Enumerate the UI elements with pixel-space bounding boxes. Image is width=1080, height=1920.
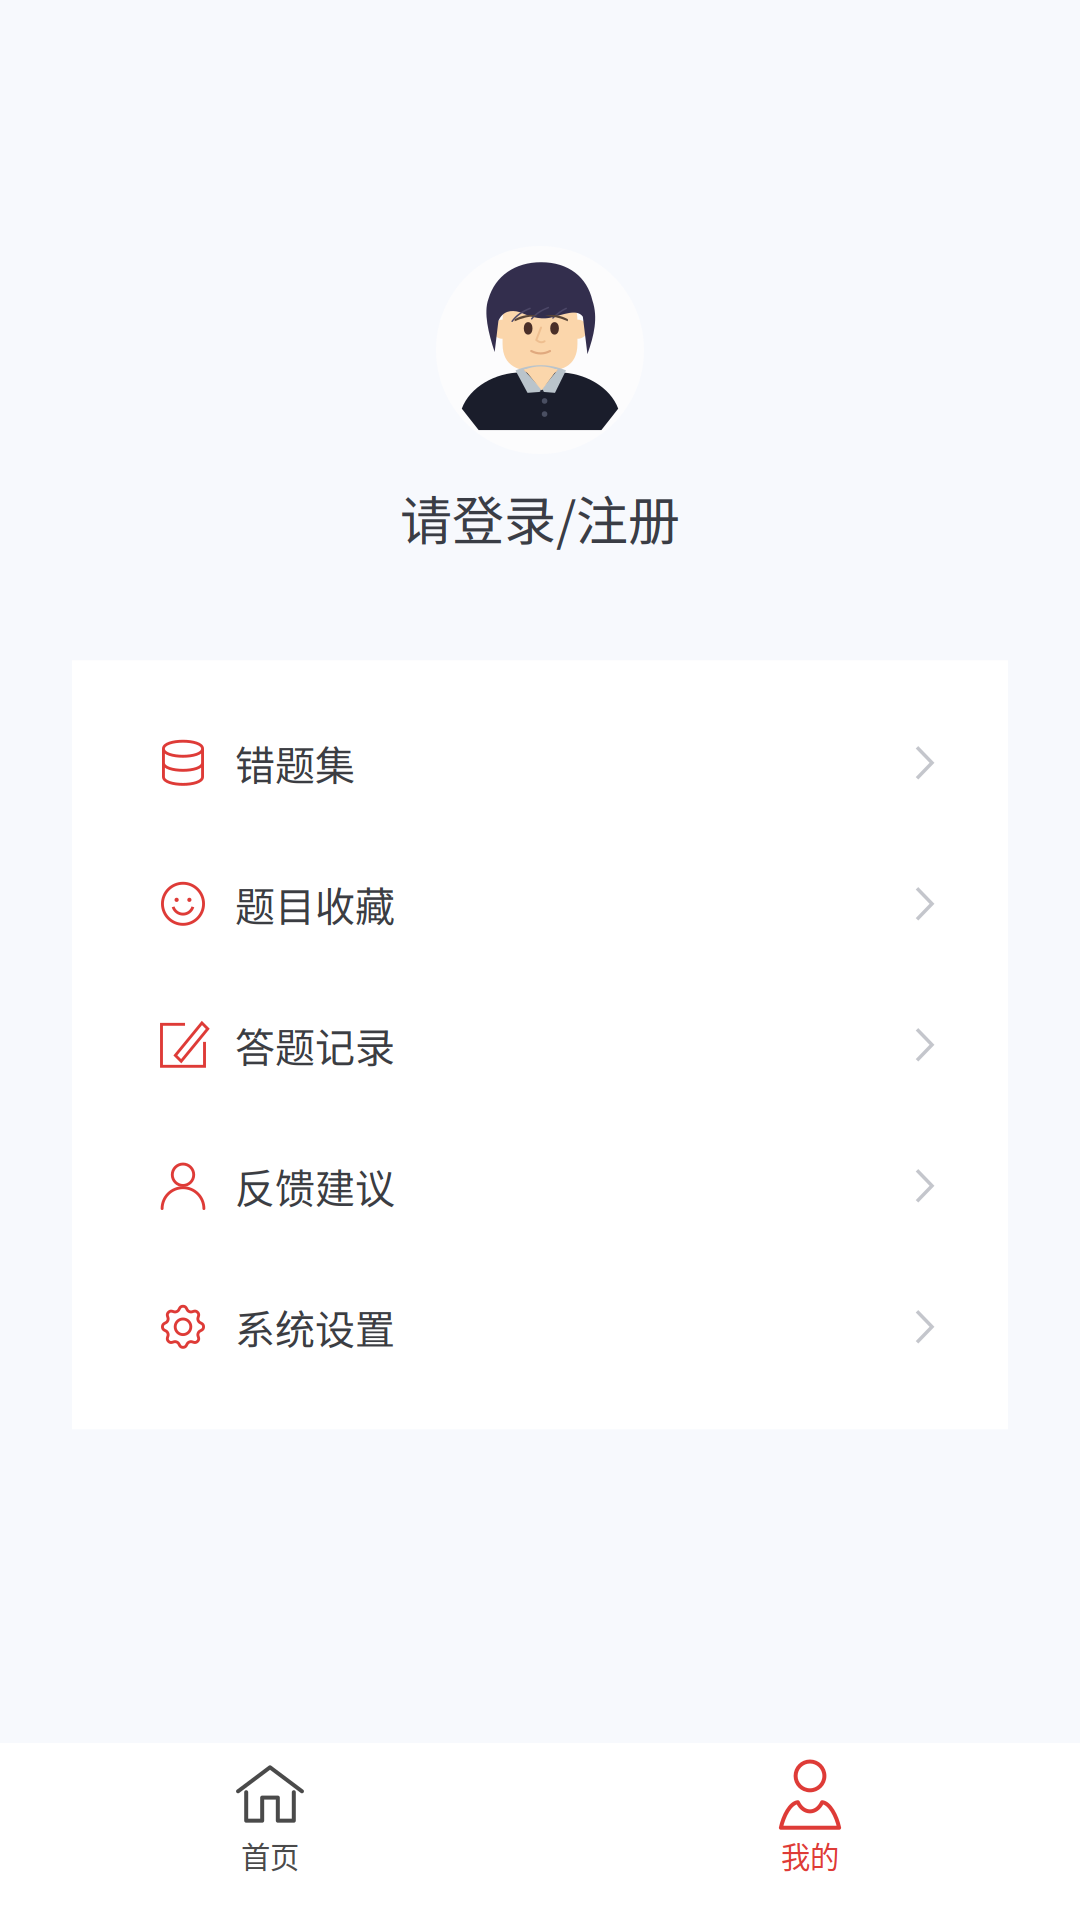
button[interactable]: 错题集 (72, 692, 1008, 833)
button[interactable]: 请登录/注册 (400, 246, 680, 555)
button[interactable]: 题目收藏 (72, 833, 1008, 974)
staticText: 错题集 (235, 734, 355, 792)
staticText: 题目收藏 (235, 875, 395, 933)
staticText: 答题记录 (235, 1016, 395, 1074)
staticText: 首页 (241, 1834, 299, 1876)
staticText: 请登录/注册 (400, 480, 680, 555)
staticText: 系统设置 (235, 1298, 395, 1356)
button[interactable]: 反馈建议 (72, 1115, 1008, 1256)
button[interactable]: 首页 (0, 1743, 540, 1920)
button[interactable]: 答题记录 (72, 974, 1008, 1115)
button[interactable]: 系统设置 (72, 1256, 1008, 1397)
staticText: 我的 (781, 1834, 839, 1876)
staticText: 反馈建议 (235, 1157, 395, 1215)
button[interactable]: 我的 (540, 1743, 1080, 1920)
